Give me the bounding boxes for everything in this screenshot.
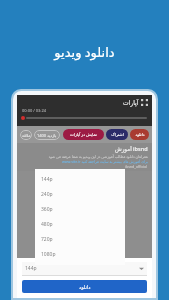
button[interactable]: 144p [22, 262, 147, 275]
staticText: 720p [41, 236, 53, 243]
staticText: 360p [41, 206, 53, 213]
staticText: آموزش ibsnd [115, 145, 148, 152]
button[interactable]: 1080p [35, 247, 125, 262]
staticText: 240p [41, 191, 53, 198]
staticText: 480p [41, 221, 53, 228]
button[interactable]: نمایش در آپارات [63, 129, 104, 140]
staticText: دانلود ویدیو [54, 43, 115, 61]
staticText: دانلود [135, 132, 145, 137]
button[interactable]: دانلود [130, 129, 149, 140]
staticText: نمایش در آپارات [70, 132, 97, 137]
staticText: 1080p [41, 251, 56, 258]
staticText: 1400 بازدید [37, 133, 57, 138]
button[interactable]: 480p [35, 217, 125, 232]
staticText: 00:00 / 03:24 [22, 108, 47, 113]
button[interactable]: 240p [35, 187, 125, 202]
staticText: 144p [25, 265, 37, 272]
staticText: www.site.ir برای آموزش های بیشتر به سایت… [61, 159, 148, 164]
staticText: 144p [41, 176, 53, 183]
button[interactable]: دانلود [22, 280, 147, 293]
button[interactable]: علاقه [20, 130, 32, 140]
staticText: ibsnd_official [125, 164, 148, 169]
button[interactable]: اشتراک [106, 129, 128, 140]
staticText: علاقه [22, 133, 31, 138]
other: Expand quality list [139, 266, 144, 271]
staticText: اشتراک [111, 132, 124, 137]
button[interactable]: 1400 بازدید [34, 130, 60, 140]
staticText: همراهان دانلود مطالب آموزشی در این ویدیو… [48, 154, 148, 159]
button[interactable]: 360p [35, 202, 125, 217]
button[interactable]: 144p [35, 172, 125, 187]
staticText: دانلود [79, 284, 91, 290]
button[interactable]: 720p [35, 232, 125, 247]
staticText: آپارات [123, 99, 139, 106]
